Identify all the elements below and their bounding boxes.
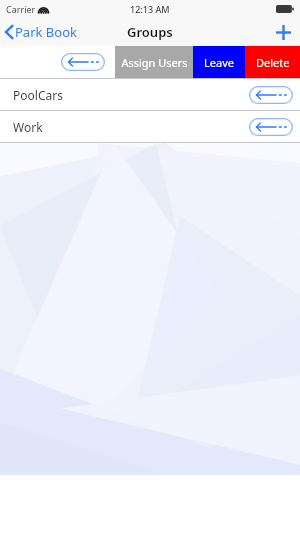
button[interactable]: Swipe left for actions <box>61 53 105 71</box>
button[interactable]: Swipe left for actions <box>249 118 293 136</box>
button[interactable]: PoolCars <box>0 79 300 110</box>
staticText: PoolCars <box>13 87 63 103</box>
staticText: 12:13 AM <box>130 3 170 15</box>
staticText: Park Book <box>15 23 77 41</box>
staticText: Assign Users <box>121 55 188 70</box>
staticText: Groups <box>127 23 173 41</box>
staticText: Delete <box>256 55 290 70</box>
button[interactable]: Work <box>0 111 300 142</box>
button[interactable]: Swipe left for actions <box>249 86 293 104</box>
staticText: Work <box>13 119 43 135</box>
button[interactable]: Add group <box>267 21 300 44</box>
staticText: Leave <box>204 55 234 70</box>
button[interactable]: Park Book <box>0 20 85 44</box>
button[interactable]: Assign Users <box>115 46 193 78</box>
staticText: Carrier <box>6 3 36 15</box>
button[interactable]: Delete <box>245 46 300 78</box>
button[interactable]: Leave <box>193 46 245 78</box>
